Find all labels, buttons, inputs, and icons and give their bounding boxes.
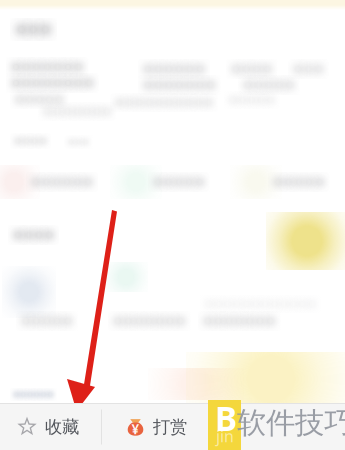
button[interactable]: 收藏: [0, 404, 101, 450]
staticText: 收藏: [45, 416, 79, 438]
staticText: 软件技巧: [237, 405, 345, 441]
staticText: ¥: [131, 420, 139, 438]
button[interactable]: ¥: [102, 404, 210, 450]
staticText: jin: [216, 425, 234, 447]
staticText: 打赏: [153, 416, 187, 438]
staticText: B: [215, 396, 237, 440]
